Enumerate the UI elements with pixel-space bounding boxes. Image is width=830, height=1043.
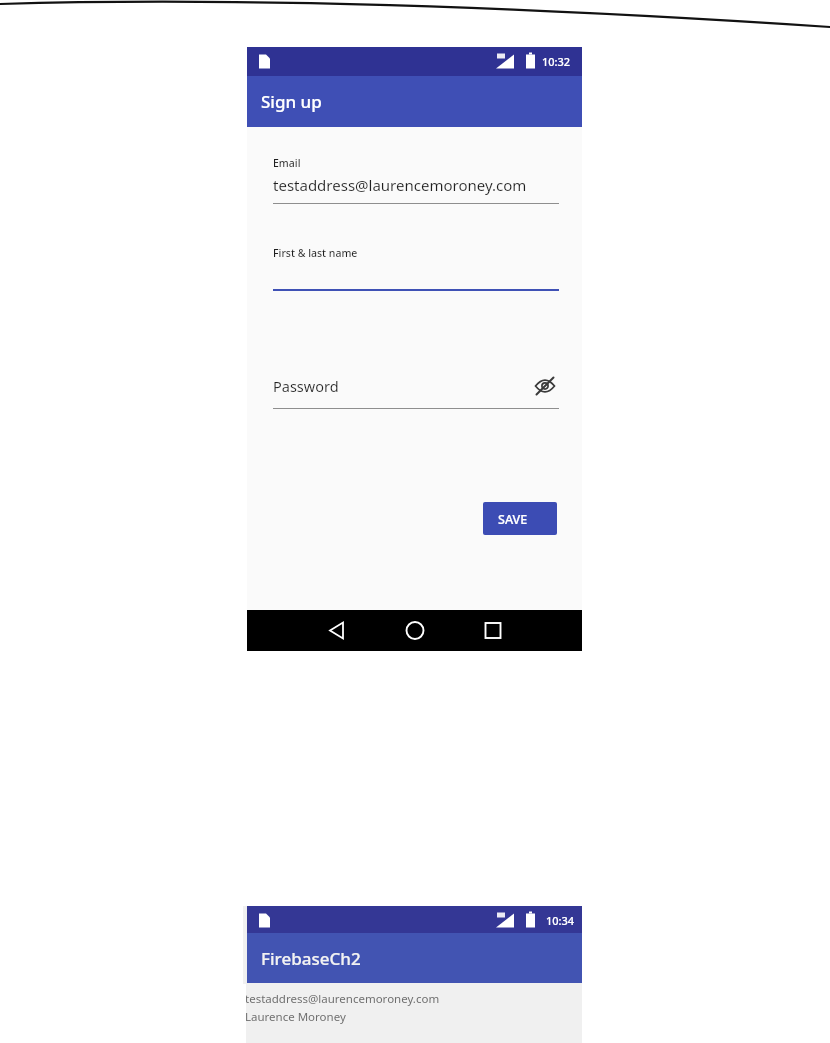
button[interactable]: SAVE: [483, 502, 557, 535]
staticText: Sign up: [261, 90, 322, 113]
button[interactable]: Email: [273, 155, 559, 205]
staticText: First & last name: [273, 246, 358, 260]
staticText: 10:32: [542, 54, 571, 69]
button[interactable]: Back: [307, 610, 367, 651]
button[interactable]: Recents: [463, 610, 523, 651]
staticText: Password: [273, 376, 339, 396]
staticText: FirebaseCh2: [261, 947, 361, 970]
button[interactable]: First & last name: [273, 246, 559, 293]
button[interactable]: Password: [273, 372, 559, 414]
button[interactable]: Home: [385, 610, 445, 651]
staticText: 10:34: [546, 913, 575, 928]
button[interactable]: Toggle password visibility: [531, 372, 559, 400]
staticText: testaddress@laurencemoroney.com: [273, 175, 527, 195]
staticText: Laurence Moroney: [245, 1009, 346, 1025]
staticText: Email: [273, 156, 301, 170]
staticText: SAVE: [498, 511, 528, 528]
staticText: testaddress@laurencemoroney.com: [245, 991, 440, 1007]
